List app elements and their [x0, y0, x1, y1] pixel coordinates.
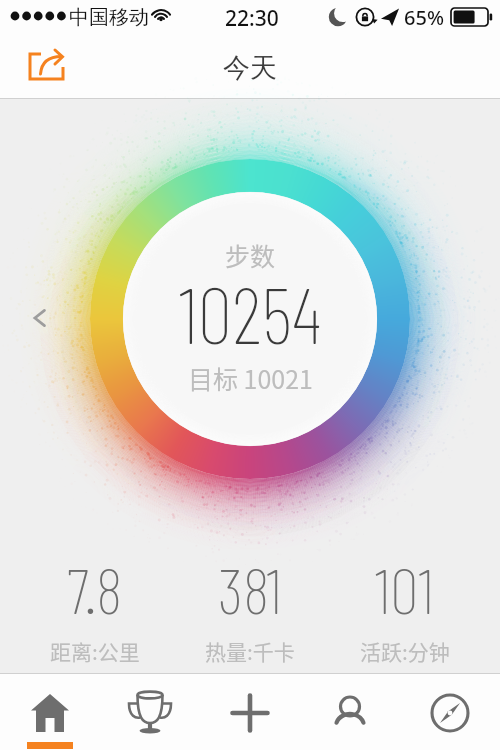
button[interactable]: Share: [22, 44, 68, 90]
staticText: 381: [218, 550, 282, 627]
staticText: 目标 10021: [188, 360, 313, 396]
button[interactable]: 381: [172, 550, 327, 666]
button[interactable]: Previous day: [24, 302, 56, 334]
staticText: 22:30: [225, 4, 279, 33]
staticText: 中国移动: [69, 5, 149, 30]
button[interactable]: 101: [327, 550, 482, 666]
button[interactable]: 7.8: [18, 550, 172, 666]
button[interactable]: Achievements: [100, 673, 200, 750]
staticText: 热量:千卡: [205, 636, 295, 666]
button[interactable]: Home: [0, 673, 100, 750]
button[interactable]: Explore: [400, 673, 500, 750]
staticText: 今天: [223, 51, 277, 85]
staticText: 65%: [404, 4, 444, 31]
staticText: 7.8: [67, 550, 123, 627]
staticText: 距离:公里: [50, 636, 140, 666]
staticText: 步数: [225, 237, 276, 273]
staticText: 101: [375, 550, 434, 627]
staticText: 活跃:分钟: [360, 636, 450, 666]
button[interactable]: Profile: [300, 673, 400, 750]
button[interactable]: Add: [200, 673, 300, 750]
staticText: 10254: [179, 266, 322, 360]
